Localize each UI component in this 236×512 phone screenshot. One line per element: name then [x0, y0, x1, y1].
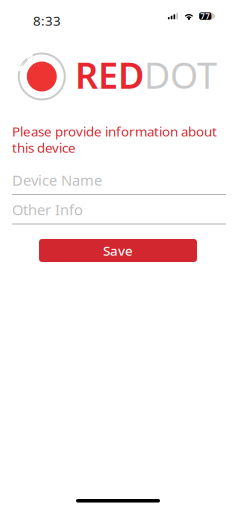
staticText: 77 — [200, 11, 210, 21]
staticText: Save — [103, 242, 133, 259]
staticText: RED — [75, 51, 144, 99]
staticText: Please provide information about — [12, 122, 217, 140]
staticText: this device — [12, 139, 76, 156]
staticText: Other Info — [12, 200, 83, 219]
button[interactable]: Save — [39, 239, 197, 262]
staticText: DOT — [144, 51, 217, 99]
staticText: Device Name — [12, 170, 102, 190]
staticText: 8:33 — [33, 12, 61, 29]
